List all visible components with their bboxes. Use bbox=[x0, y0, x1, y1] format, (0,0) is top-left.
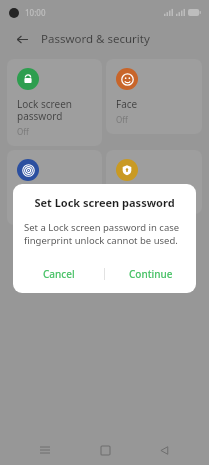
button[interactable]: Cancel bbox=[13, 261, 104, 287]
staticText: Password & security bbox=[41, 31, 150, 47]
staticText: Continue bbox=[129, 267, 173, 281]
staticText: Cancel bbox=[43, 267, 75, 281]
staticText: Fingerprint bbox=[17, 188, 70, 202]
staticText: Lock screen password bbox=[17, 97, 73, 123]
staticText: 10:00 bbox=[25, 7, 46, 18]
staticText: Privacy bbox=[116, 188, 150, 202]
button[interactable]: Home bbox=[91, 436, 119, 464]
button[interactable]: Back bbox=[150, 436, 178, 464]
button[interactable]: Fingerprint bbox=[7, 150, 102, 225]
button[interactable]: Recent apps bbox=[31, 436, 59, 464]
staticText: Off bbox=[116, 114, 128, 125]
button[interactable]: Lock screen password bbox=[7, 59, 102, 146]
staticText: Off bbox=[17, 126, 29, 137]
button[interactable]: Back bbox=[12, 29, 32, 49]
staticText: Set Lock screen password bbox=[23, 195, 186, 210]
button[interactable]: Privacy bbox=[106, 150, 202, 214]
button[interactable]: Continue bbox=[105, 261, 196, 287]
button[interactable]: Face bbox=[106, 59, 202, 134]
staticText: Set a Lock screen password in case finge… bbox=[24, 221, 185, 247]
button[interactable]: System security bbox=[0, 239, 209, 271]
staticText: Face bbox=[116, 97, 138, 111]
